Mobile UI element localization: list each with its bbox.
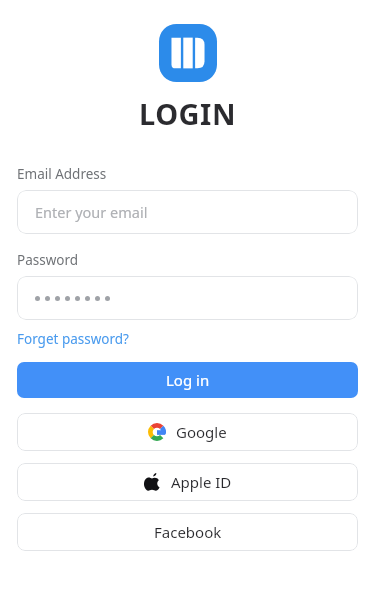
button[interactable]: Forget password? [17, 329, 129, 349]
staticText: Email Address [17, 165, 107, 183]
button[interactable]: Log in [17, 362, 358, 398]
button[interactable]: Apple ID [17, 463, 358, 501]
button[interactable]: Google [17, 413, 358, 451]
staticText: LOGIN [139, 94, 236, 133]
staticText: Enter your email [35, 202, 148, 222]
button[interactable]: Enter your email [17, 190, 358, 234]
other: Apple ID [143, 473, 161, 491]
staticText: Google [176, 422, 227, 442]
button[interactable]: Facebook [17, 513, 358, 551]
other: App logo [159, 24, 217, 82]
staticText: Forget password? [17, 330, 129, 348]
button[interactable] [17, 276, 358, 320]
staticText: Password [17, 251, 79, 269]
staticText: Log in [166, 370, 210, 390]
other: Google [148, 423, 166, 441]
staticText: Facebook [154, 522, 222, 542]
staticText: Apple ID [171, 472, 232, 492]
